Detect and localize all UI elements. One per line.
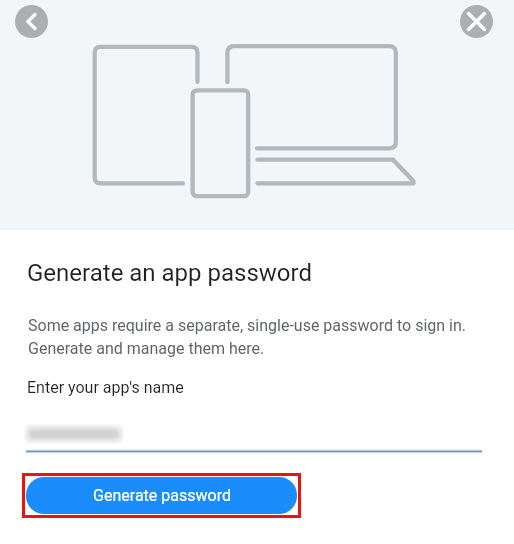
button[interactable]: Back: [15, 5, 48, 38]
staticText: Generate password: [93, 486, 231, 505]
staticText: Generate an app password: [27, 259, 312, 287]
button[interactable]: Generate password: [26, 477, 297, 514]
button[interactable]: Close: [460, 5, 493, 38]
staticText: Some apps require a separate, single-use…: [28, 316, 467, 358]
staticText: Enter your app's name: [27, 378, 184, 397]
